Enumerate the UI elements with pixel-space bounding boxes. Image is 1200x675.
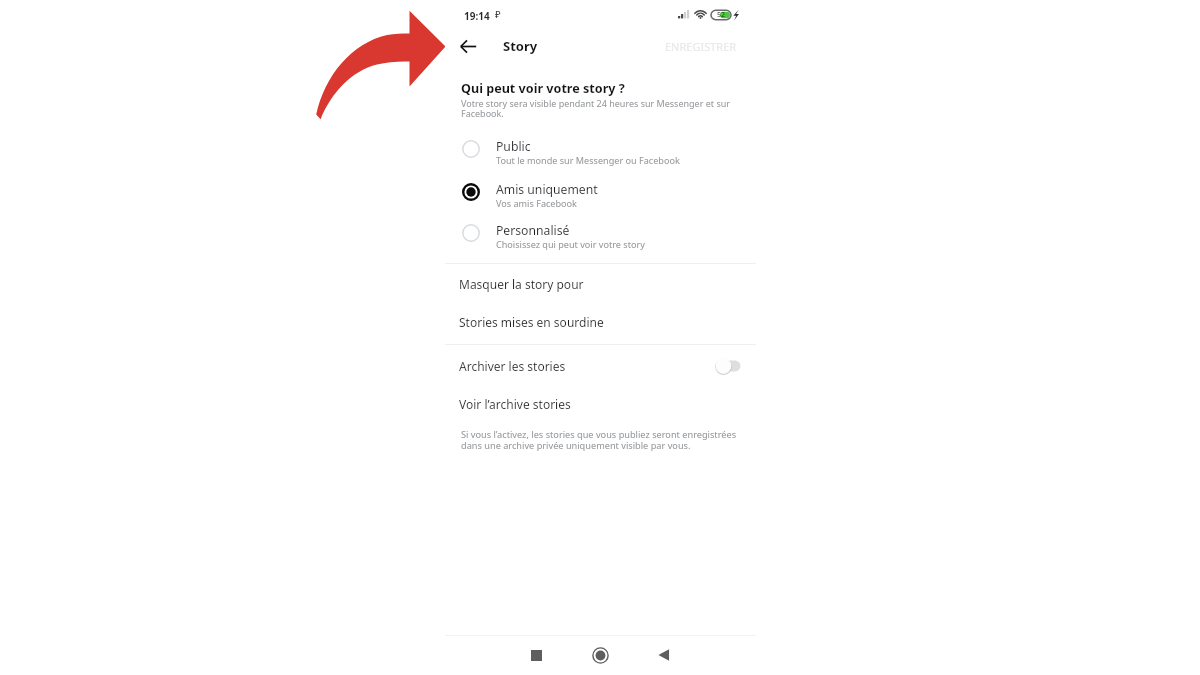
- staticText: Voir l’archive stories: [459, 396, 571, 412]
- staticText: Story: [503, 37, 538, 55]
- staticText: Archiver les stories: [459, 358, 566, 374]
- button[interactable]: Recents: [519, 638, 553, 672]
- button[interactable]: Back: [647, 638, 681, 672]
- staticText: ENREGISTRER: [665, 39, 737, 54]
- button[interactable]: ENREGISTRER: [659, 36, 739, 57]
- staticText: Personnalisé: [496, 222, 570, 239]
- staticText: 52: [717, 10, 726, 20]
- button[interactable]: Stories mises en sourdine: [445, 303, 755, 340]
- staticText: Choisissez qui peut voir votre story: [496, 238, 645, 250]
- button[interactable]: Back: [456, 34, 481, 59]
- staticText: Si vous l’activez, les stories que vous …: [461, 428, 756, 451]
- staticText: Masquer la story pour: [459, 276, 584, 292]
- staticText: Stories mises en sourdine: [459, 314, 604, 330]
- button[interactable]: Archiver les stories: [445, 347, 755, 385]
- button[interactable]: Home: [583, 638, 617, 672]
- button[interactable]: Personnalisé: [445, 211, 755, 254]
- staticText: ₽: [495, 8, 501, 21]
- button[interactable]: Masquer la story pour: [445, 265, 755, 302]
- staticText: Public: [496, 138, 531, 155]
- button[interactable]: Voir l’archive stories: [445, 385, 755, 422]
- button[interactable]: Public: [445, 127, 755, 170]
- staticText: 19:14: [464, 9, 490, 23]
- staticText: Qui peut voir votre story ?: [461, 80, 625, 97]
- staticText: Votre story sera visible pendant 24 heur…: [461, 97, 751, 120]
- staticText: Tout le monde sur Messenger ou Facebook: [496, 154, 680, 166]
- staticText: Amis uniquement: [496, 181, 598, 198]
- button[interactable]: Amis uniquement: [445, 170, 755, 213]
- staticText: Vos amis Facebook: [496, 197, 577, 209]
